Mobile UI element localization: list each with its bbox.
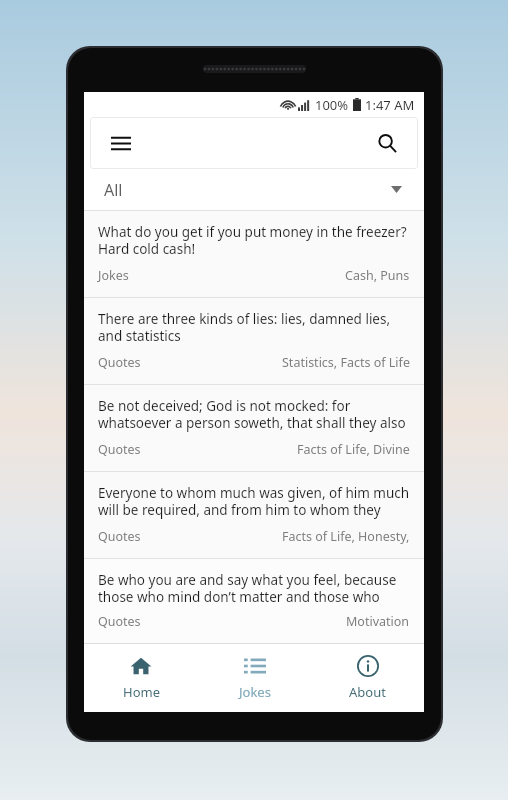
staticText: Jokes (98, 267, 129, 284)
button[interactable]: Jokes (198, 644, 311, 712)
staticText: Statistics, Facts of Life (282, 354, 410, 371)
staticText: Everyone to whom much was given, of him … (98, 484, 410, 519)
staticText: Quotes (98, 613, 141, 630)
staticText: Quotes (98, 354, 141, 371)
staticText: Jokes (239, 683, 271, 701)
button[interactable]: Home (84, 644, 198, 712)
staticText: There are three kinds of lies: lies, dam… (98, 310, 410, 345)
staticText: Facts of Life, Divine (297, 441, 410, 458)
staticText: Be who you are and say what you feel, be… (98, 571, 410, 606)
button[interactable]: Menu (104, 126, 138, 160)
staticText: Be not deceived; God is not mocked: for … (98, 397, 410, 432)
button[interactable]: Be not deceived; God is not mocked: for … (84, 384, 424, 471)
staticText: Facts of Life, Honesty, (282, 528, 410, 545)
button[interactable]: About (311, 644, 424, 712)
staticText: Home (123, 683, 160, 701)
button[interactable]: All (84, 169, 424, 210)
staticText: About (349, 683, 386, 701)
staticText: Quotes (98, 441, 141, 458)
staticText: Motivation (346, 613, 410, 630)
staticText: What do you get if you put money in the … (98, 223, 410, 258)
staticText: Cash, Puns (345, 267, 410, 284)
staticText: All (104, 179, 123, 201)
button[interactable]: There are three kinds of lies: lies, dam… (84, 297, 424, 384)
staticText: Quotes (98, 528, 141, 545)
button[interactable]: Everyone to whom much was given, of him … (84, 471, 424, 558)
button[interactable]: Search (370, 126, 404, 160)
button[interactable]: Be who you are and say what you feel, be… (84, 558, 424, 643)
button[interactable]: Menu (90, 117, 418, 169)
staticText: 1:47 AM (365, 96, 415, 114)
staticText: 100% (315, 96, 349, 114)
button[interactable]: What do you get if you put money in the … (84, 210, 424, 297)
